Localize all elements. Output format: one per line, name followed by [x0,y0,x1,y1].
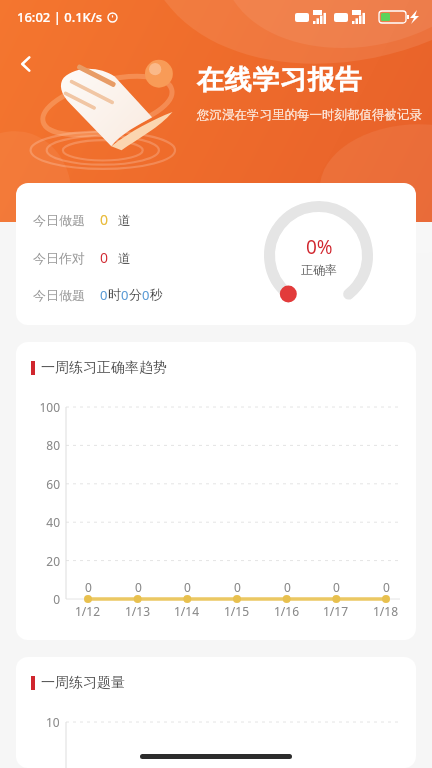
staticText: 道 [118,250,131,266]
staticText: 0 [100,210,109,229]
staticText: 0 [234,579,241,595]
staticText: 一周练习题量 [41,674,125,692]
staticText: 10 [46,714,60,730]
staticText: 0 [142,286,150,304]
staticText: 0 [333,579,340,595]
staticText: 1/14 [174,603,200,619]
staticText: 0 [53,591,60,607]
staticText: 在线学习报告 [197,63,363,97]
staticText: 1/18 [373,603,399,619]
staticText: 80 [46,437,60,453]
staticText: 0 [383,579,390,595]
staticText: 20 [46,553,60,569]
staticText: 0 [100,286,108,304]
staticText: 时 [108,286,121,302]
staticText: 0 [135,579,142,595]
staticText: 0 [184,579,191,595]
staticText: 0% [306,234,333,260]
staticText: 道 [118,212,131,228]
staticText: 秒 [150,286,163,302]
staticText: 1/13 [125,603,151,619]
staticText: 0 [100,248,109,267]
staticText: 分 [129,286,142,302]
staticText: 1/12 [75,603,101,619]
staticText: 0 [85,579,92,595]
staticText: 今日作对 [33,250,85,266]
staticText: 16:02 | 0.1K/s [17,8,103,26]
staticText: 60 [46,476,60,492]
staticText: 您沉浸在学习里的每一时刻都值得被记录 [197,107,422,123]
staticText: 40 [46,514,60,530]
staticText: 1/17 [323,603,349,619]
button[interactable]: 今日做题 [16,183,416,325]
staticText: 0 [284,579,291,595]
staticText: 1/15 [224,603,250,619]
staticText: 1/16 [274,603,300,619]
staticText: 正确率 [301,262,337,277]
staticText: 今日做题 [33,212,85,228]
staticText: 今日做题 [33,287,85,303]
button[interactable]: Back [6,44,46,84]
staticText: 一周练习正确率趋势 [41,359,167,377]
staticText: 100 [39,399,60,415]
staticText: 0 [121,286,129,304]
